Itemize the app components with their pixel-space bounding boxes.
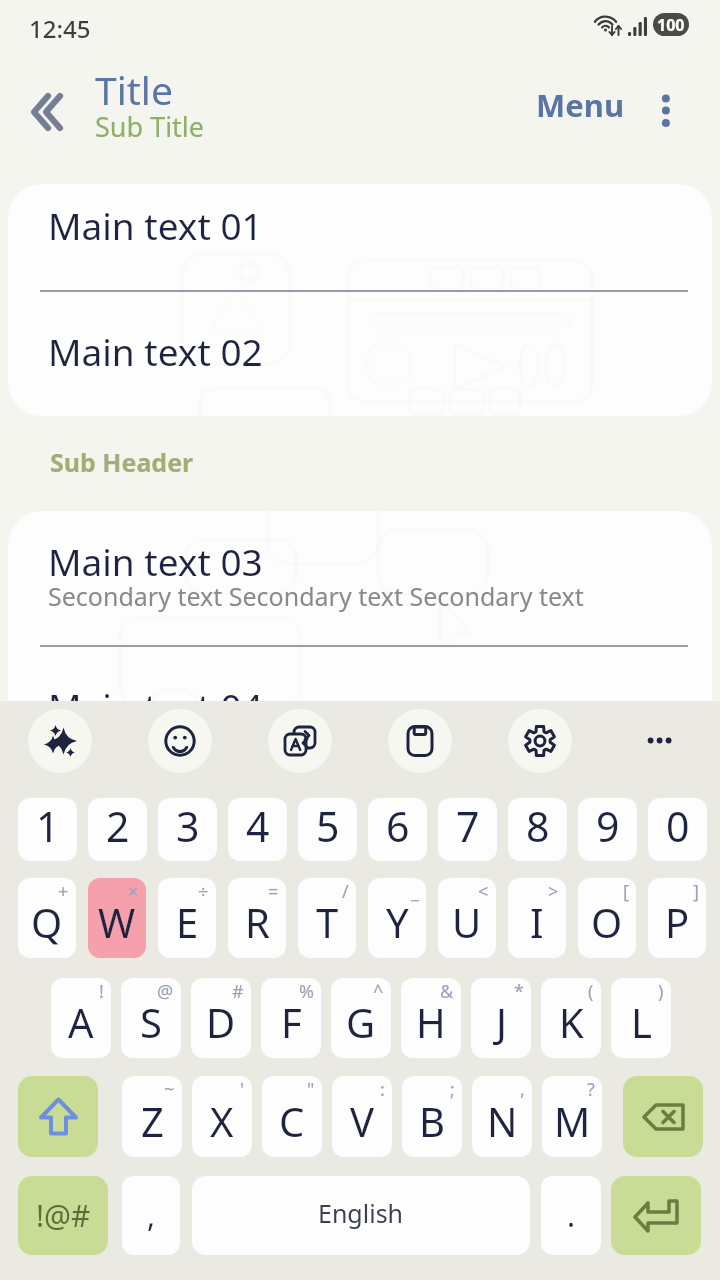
button[interactable]: 2 — [88, 798, 147, 861]
staticText: , — [147, 1195, 156, 1236]
button[interactable]: < — [438, 878, 496, 958]
staticText: 12:45 — [29, 12, 91, 45]
button[interactable]: Translate — [268, 709, 332, 773]
button[interactable]: , — [122, 1176, 180, 1255]
staticText: [ — [623, 879, 629, 904]
staticText: < — [478, 879, 489, 904]
staticText: K — [559, 995, 584, 1049]
button[interactable]: Clipboard — [388, 709, 452, 773]
button[interactable]: Emoji — [148, 709, 212, 773]
button[interactable]: + — [18, 878, 76, 958]
button[interactable]: !@# — [18, 1176, 108, 1255]
staticText: 100 — [657, 14, 685, 36]
button[interactable]: Main text 03 — [8, 511, 712, 644]
button[interactable]: More — [628, 709, 692, 773]
staticText: G — [346, 995, 376, 1049]
button[interactable]: % — [261, 978, 321, 1058]
staticText: W — [98, 895, 136, 949]
staticText: % — [299, 979, 314, 1004]
button[interactable]: × — [88, 878, 146, 958]
button[interactable]: 8 — [508, 798, 567, 861]
button[interactable]: , — [472, 1076, 532, 1157]
button[interactable]: " — [262, 1076, 322, 1157]
button[interactable]: 0 — [648, 798, 707, 861]
staticText: 4 — [246, 798, 270, 854]
staticText: O — [591, 895, 623, 949]
button[interactable]: 9 — [578, 798, 637, 861]
staticText: Secondary text Secondary text Secondary … — [48, 579, 584, 613]
button[interactable]: Main text 02 — [8, 290, 712, 416]
button[interactable]: > — [508, 878, 566, 958]
button[interactable]: Backspace — [623, 1076, 703, 1157]
button[interactable]: ) — [611, 978, 671, 1058]
staticText: 6 — [386, 798, 410, 854]
button[interactable]: English — [192, 1176, 530, 1255]
button[interactable]: Settings — [508, 709, 572, 773]
staticText: : — [380, 1077, 385, 1102]
staticText: 2 — [106, 798, 130, 854]
button[interactable]: Main text 04 — [8, 645, 712, 784]
staticText: B — [419, 1094, 445, 1148]
button[interactable]: . — [541, 1176, 601, 1255]
staticText: ' — [240, 1077, 245, 1102]
staticText: 1 — [36, 798, 60, 854]
button[interactable]: = — [228, 878, 286, 958]
staticText: !@# — [36, 1195, 91, 1236]
staticText: Sub Header — [50, 445, 194, 479]
staticText: C — [279, 1094, 305, 1148]
staticText: ^ — [373, 979, 384, 1004]
button[interactable]: ? — [542, 1076, 602, 1157]
button[interactable]: Menu — [520, 67, 641, 143]
button[interactable]: 5 — [298, 798, 357, 861]
button[interactable]: ; — [402, 1076, 462, 1157]
staticText: ÷ — [198, 879, 209, 904]
button[interactable]: ^ — [331, 978, 391, 1058]
staticText: / — [342, 879, 349, 904]
staticText: 7 — [456, 798, 480, 854]
staticText: L — [631, 995, 652, 1049]
button[interactable]: 3 — [158, 798, 217, 861]
staticText: 9 — [596, 798, 620, 854]
button[interactable]: ' — [192, 1076, 252, 1157]
button[interactable]: 6 — [368, 798, 427, 861]
button[interactable]: 7 — [438, 798, 497, 861]
button[interactable]: # — [191, 978, 251, 1058]
button[interactable]: @ — [121, 978, 181, 1058]
button[interactable]: ~ — [122, 1076, 182, 1157]
button[interactable]: AI suggestions — [28, 709, 92, 773]
staticText: 5 — [316, 798, 340, 854]
staticText: D — [206, 995, 236, 1049]
button[interactable]: ! — [51, 978, 111, 1058]
button[interactable]: * — [471, 978, 531, 1058]
button[interactable]: Back — [14, 81, 76, 143]
button[interactable]: Enter — [611, 1176, 701, 1255]
staticText: & — [440, 979, 454, 1004]
staticText: M — [554, 1094, 591, 1148]
button[interactable]: : — [332, 1076, 392, 1157]
button[interactable]: More options — [636, 80, 696, 140]
button[interactable]: & — [401, 978, 461, 1058]
staticText: T — [316, 895, 339, 949]
button[interactable]: _ — [368, 878, 426, 958]
button[interactable]: ] — [648, 878, 706, 958]
staticText: * — [514, 979, 524, 1004]
button[interactable]: ÷ — [158, 878, 216, 958]
button[interactable]: Main text 01 — [8, 184, 712, 289]
staticText: S — [140, 995, 162, 1049]
button[interactable]: ( — [541, 978, 601, 1058]
staticText: E — [176, 895, 199, 949]
staticText: Main text 03 — [48, 536, 263, 586]
button[interactable]: Sub Header — [36, 437, 208, 487]
staticText: 8 — [526, 798, 550, 854]
staticText: " — [307, 1077, 315, 1102]
staticText: 0 — [666, 798, 690, 854]
button[interactable]: 1 — [18, 798, 77, 861]
staticText: ~ — [164, 1077, 175, 1102]
button[interactable]: Shift — [18, 1076, 98, 1157]
staticText: A — [68, 995, 94, 1049]
button[interactable]: 4 — [228, 798, 287, 861]
staticText: + — [58, 879, 69, 904]
button[interactable]: [ — [578, 878, 636, 958]
staticText: _ — [411, 879, 419, 904]
button[interactable]: / — [298, 878, 356, 958]
